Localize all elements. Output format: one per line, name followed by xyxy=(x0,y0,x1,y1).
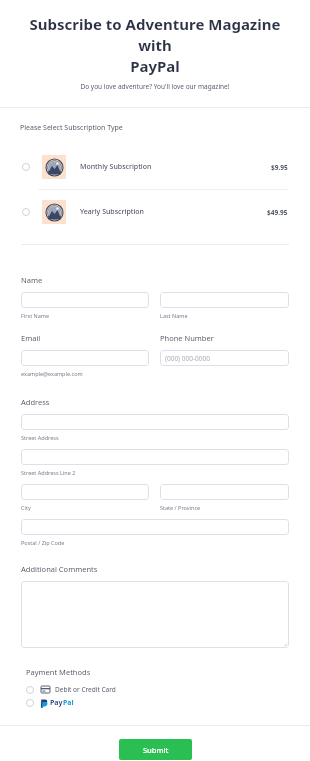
staticText: (000) 000-0000 xyxy=(165,354,210,363)
staticText: PayPal xyxy=(0,56,310,76)
button[interactable] xyxy=(21,292,149,308)
staticText: Address xyxy=(21,397,50,407)
staticText: Monthly Subscription xyxy=(80,162,271,172)
staticText: Submit xyxy=(143,745,169,755)
staticText: City xyxy=(21,504,31,511)
staticText: $49.95 xyxy=(267,208,288,217)
button[interactable]: Monthly Subscription xyxy=(22,145,288,189)
button[interactable] xyxy=(21,519,289,535)
other: Debit or credit card xyxy=(41,686,50,693)
staticText: Last Name xyxy=(160,312,188,319)
staticText: Pay xyxy=(50,698,63,708)
staticText: First Name xyxy=(21,312,50,319)
staticText: Street Address Line 2 xyxy=(21,469,76,476)
button[interactable] xyxy=(21,449,289,465)
staticText: State / Province xyxy=(160,504,201,511)
button[interactable] xyxy=(21,581,289,648)
button[interactable]: PayPal xyxy=(26,698,310,708)
staticText: Street Address xyxy=(21,434,59,441)
staticText: Please Select Subscription Type xyxy=(20,123,123,133)
staticText: Payment Methods xyxy=(26,667,91,677)
button[interactable] xyxy=(21,350,149,366)
staticText: $9.95 xyxy=(271,163,288,172)
button[interactable]: Yearly Subscription xyxy=(22,190,288,234)
staticText: Email xyxy=(21,333,41,343)
staticText: Yearly Subscription xyxy=(80,207,267,217)
button[interactable] xyxy=(160,292,289,308)
button[interactable] xyxy=(21,414,289,430)
button[interactable]: (000) 000-0000 xyxy=(160,350,289,366)
staticText: Debit or Credit Card xyxy=(55,685,116,694)
staticText: Subscribe to Adventure Magazine with xyxy=(16,14,294,56)
staticText: Phone Number xyxy=(160,333,214,343)
staticText: Name xyxy=(21,275,43,285)
button[interactable]: Debit or credit card xyxy=(26,685,310,694)
staticText: example@example.com xyxy=(21,370,83,377)
staticText: Do you love adventure? You'll love our m… xyxy=(0,82,310,91)
button[interactable] xyxy=(21,484,149,500)
other: PayPal xyxy=(41,698,74,708)
button[interactable]: Submit xyxy=(119,739,192,760)
staticText: Pal xyxy=(63,698,74,708)
button[interactable] xyxy=(160,484,289,500)
staticText: Additional Comments xyxy=(21,564,98,574)
staticText: Postal / Zip Code xyxy=(21,539,65,546)
